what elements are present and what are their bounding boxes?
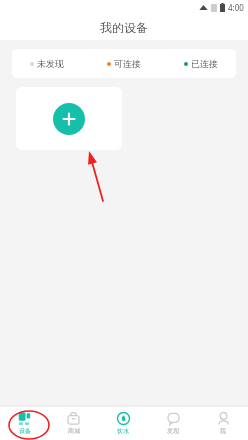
staticText: 4:00	[228, 2, 244, 13]
staticText: 我	[220, 427, 226, 435]
button[interactable]: 商城	[49, 406, 98, 440]
staticText: 未发现	[37, 58, 64, 69]
staticText: 我的设备	[100, 20, 148, 35]
button[interactable]: Add device	[16, 87, 122, 150]
button[interactable]: 可连接	[107, 58, 141, 69]
staticText: 发现	[167, 427, 179, 435]
button[interactable]: 我	[198, 406, 248, 440]
button[interactable]: 发现	[148, 406, 198, 440]
staticText: 商城	[68, 427, 80, 435]
staticText: 饮水	[117, 427, 129, 435]
staticText: 已连接	[191, 58, 218, 69]
button[interactable]: 已连接	[184, 58, 218, 69]
staticText: 设备	[19, 427, 31, 435]
button[interactable]: 未发现	[30, 58, 64, 69]
button[interactable]: 饮水	[98, 406, 148, 440]
button[interactable]: 设备	[0, 406, 49, 440]
staticText: 可连接	[114, 58, 141, 69]
